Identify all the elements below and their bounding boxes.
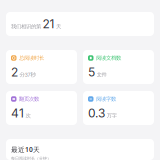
staticText: 阅读文档数 (96, 55, 121, 61)
staticText: 每日阅读时长（分钟） (11, 156, 51, 160)
staticText: 万字 (106, 112, 116, 119)
button[interactable]: 阅读字数 (83, 91, 154, 125)
staticText: 阅读字数 (96, 96, 116, 102)
staticText: 最近10天 (11, 145, 40, 154)
staticText: 0.3 (88, 106, 105, 120)
staticText: 翻页次数 (19, 96, 39, 102)
staticText: 41 (11, 106, 24, 120)
staticText: 总阅读时长 (19, 55, 44, 61)
staticText: 5 (88, 65, 95, 79)
button[interactable]: 阅读文档数 (83, 50, 154, 84)
staticText: 21 (42, 17, 54, 31)
staticText: 天 (56, 23, 61, 30)
button[interactable]: 总阅读时长 (6, 50, 77, 84)
staticText: 文件 (96, 71, 106, 78)
staticText: 2 (11, 65, 18, 79)
staticText: 我们相识的第 (11, 23, 41, 30)
staticText: 次 (25, 112, 30, 119)
staticText: 分37秒 (19, 71, 35, 78)
button[interactable]: 翻页次数 (6, 91, 77, 125)
